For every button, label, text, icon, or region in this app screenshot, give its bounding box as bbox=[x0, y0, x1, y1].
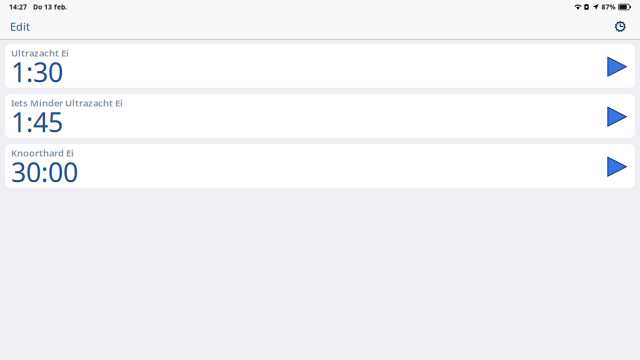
staticText: Knoorthard Ei bbox=[11, 147, 74, 159]
staticText: Edit bbox=[10, 19, 30, 34]
button[interactable]: Iets Minder Ultrazacht Ei bbox=[5, 94, 635, 138]
staticText: Do 13 feb. bbox=[33, 3, 67, 11]
staticText: Iets Minder Ultrazacht Ei bbox=[11, 97, 123, 109]
staticText: 14:27 bbox=[9, 3, 27, 11]
button[interactable]: Knoorthard Ei bbox=[5, 144, 635, 188]
button[interactable]: Settings bbox=[606, 15, 634, 38]
staticText: 1:30 bbox=[11, 54, 63, 90]
staticText: 1:45 bbox=[11, 104, 63, 140]
staticText: Ultrazacht Ei bbox=[11, 47, 69, 59]
button[interactable]: Edit bbox=[1, 15, 40, 38]
button[interactable]: Ultrazacht Ei bbox=[5, 44, 635, 88]
staticText: 30:00 bbox=[11, 154, 78, 190]
staticText: 87% bbox=[601, 3, 615, 11]
